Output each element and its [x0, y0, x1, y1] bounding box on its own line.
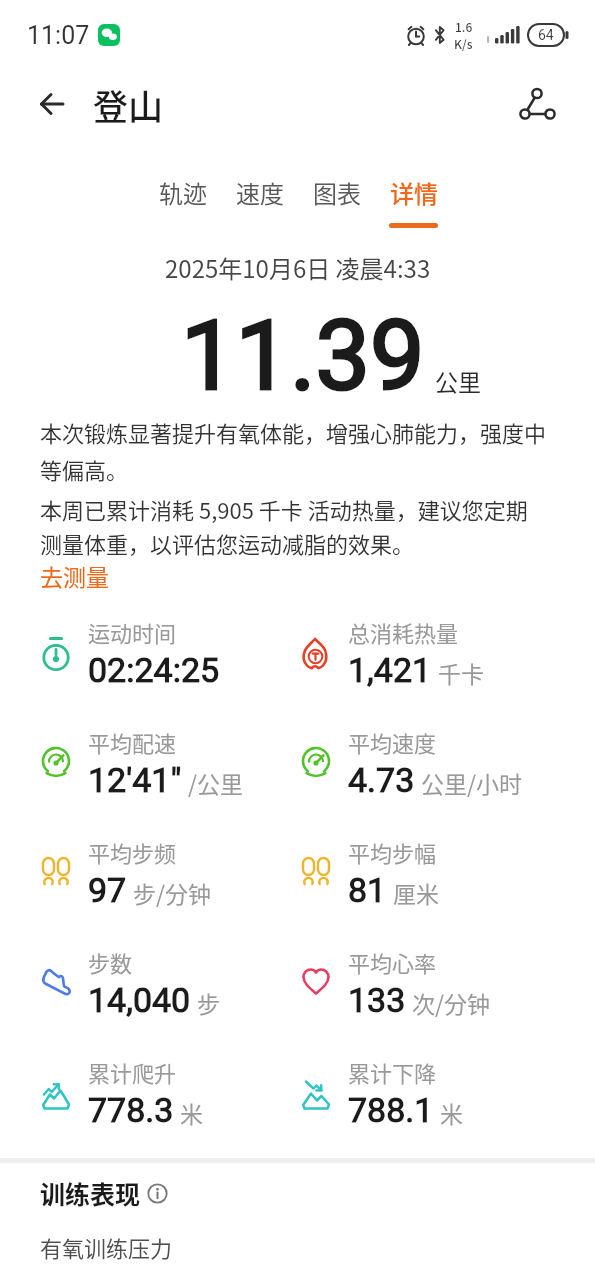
- button[interactable]: [36, 88, 68, 120]
- staticText: 11.39: [181, 299, 425, 413]
- staticText: 训练表现: [40, 1175, 141, 1211]
- button[interactable]: 步数: [40, 928, 300, 1038]
- staticText: 788.1: [348, 1090, 434, 1130]
- staticText: 本周已累计消耗 5,905 千卡 活动热量，建议您定期 测量体重，以评估您运动减…: [40, 493, 528, 559]
- button[interactable]: 速度: [235, 175, 284, 228]
- button[interactable]: 平均步幅: [300, 818, 560, 928]
- staticText: 1.6: [455, 18, 473, 35]
- button[interactable]: 去测量: [40, 559, 109, 592]
- staticText: 步: [197, 986, 220, 1019]
- button[interactable]: 累计下降: [300, 1038, 560, 1148]
- button[interactable]: 有氧训练压力: [40, 1231, 173, 1263]
- staticText: 公里: [435, 364, 481, 397]
- button[interactable]: 平均配速: [40, 708, 300, 818]
- button[interactable]: 平均心率: [300, 928, 560, 1038]
- staticText: 778.3: [88, 1090, 174, 1130]
- staticText: 02:24:25: [88, 650, 220, 690]
- staticText: 米: [180, 1096, 203, 1129]
- staticText: 平均速度: [348, 726, 437, 758]
- staticText: 本次锻炼显著提升有氧体能，增强心肺能力，强度中 等偏高。: [40, 416, 547, 485]
- staticText: 133: [348, 980, 406, 1020]
- staticText: K/s: [454, 35, 473, 52]
- staticText: /公里: [188, 766, 244, 799]
- staticText: 运动时间: [88, 616, 177, 648]
- button[interactable]: 训练表现: [40, 1175, 168, 1211]
- button[interactable]: 累计爬升: [40, 1038, 300, 1148]
- staticText: 累计爬升: [88, 1056, 177, 1088]
- button[interactable]: 平均速度: [300, 708, 560, 818]
- staticText: 登山: [93, 79, 164, 130]
- staticText: 总消耗热量: [348, 616, 459, 648]
- button[interactable]: 详情: [389, 175, 438, 228]
- button[interactable]: 轨迹: [158, 175, 207, 228]
- staticText: 64: [538, 27, 554, 43]
- staticText: 4.73: [348, 760, 415, 800]
- staticText: 11:07: [27, 21, 90, 50]
- staticText: 平均心率: [348, 946, 437, 978]
- staticText: 2025年10月6日 凌晨4:33: [165, 250, 431, 285]
- staticText: 轨迹: [159, 175, 207, 210]
- staticText: 速度: [236, 175, 284, 210]
- staticText: 步数: [88, 946, 133, 978]
- staticText: 81: [348, 870, 387, 910]
- staticText: 14,040: [88, 980, 191, 1020]
- staticText: 累计下降: [348, 1056, 437, 1088]
- staticText: 步/分钟: [133, 876, 212, 909]
- staticText: 平均步频: [88, 836, 177, 868]
- button[interactable]: 总消耗热量: [300, 598, 560, 708]
- staticText: 厘米: [393, 876, 439, 909]
- staticText: 千卡: [438, 656, 484, 689]
- staticText: 平均步幅: [348, 836, 437, 868]
- staticText: 详情: [390, 175, 438, 210]
- staticText: 12'41": [88, 760, 182, 800]
- button[interactable]: [519, 87, 557, 121]
- staticText: 1,421: [348, 650, 432, 690]
- button[interactable]: 图表: [312, 175, 361, 228]
- staticText: 97: [88, 870, 127, 910]
- button[interactable]: 运动时间: [40, 598, 300, 708]
- button[interactable]: 平均步频: [40, 818, 300, 928]
- staticText: 平均配速: [88, 726, 177, 758]
- staticText: 米: [440, 1096, 463, 1129]
- staticText: 图表: [313, 175, 361, 210]
- staticText: 次/分钟: [412, 986, 491, 1019]
- staticText: 公里/小时: [421, 766, 523, 799]
